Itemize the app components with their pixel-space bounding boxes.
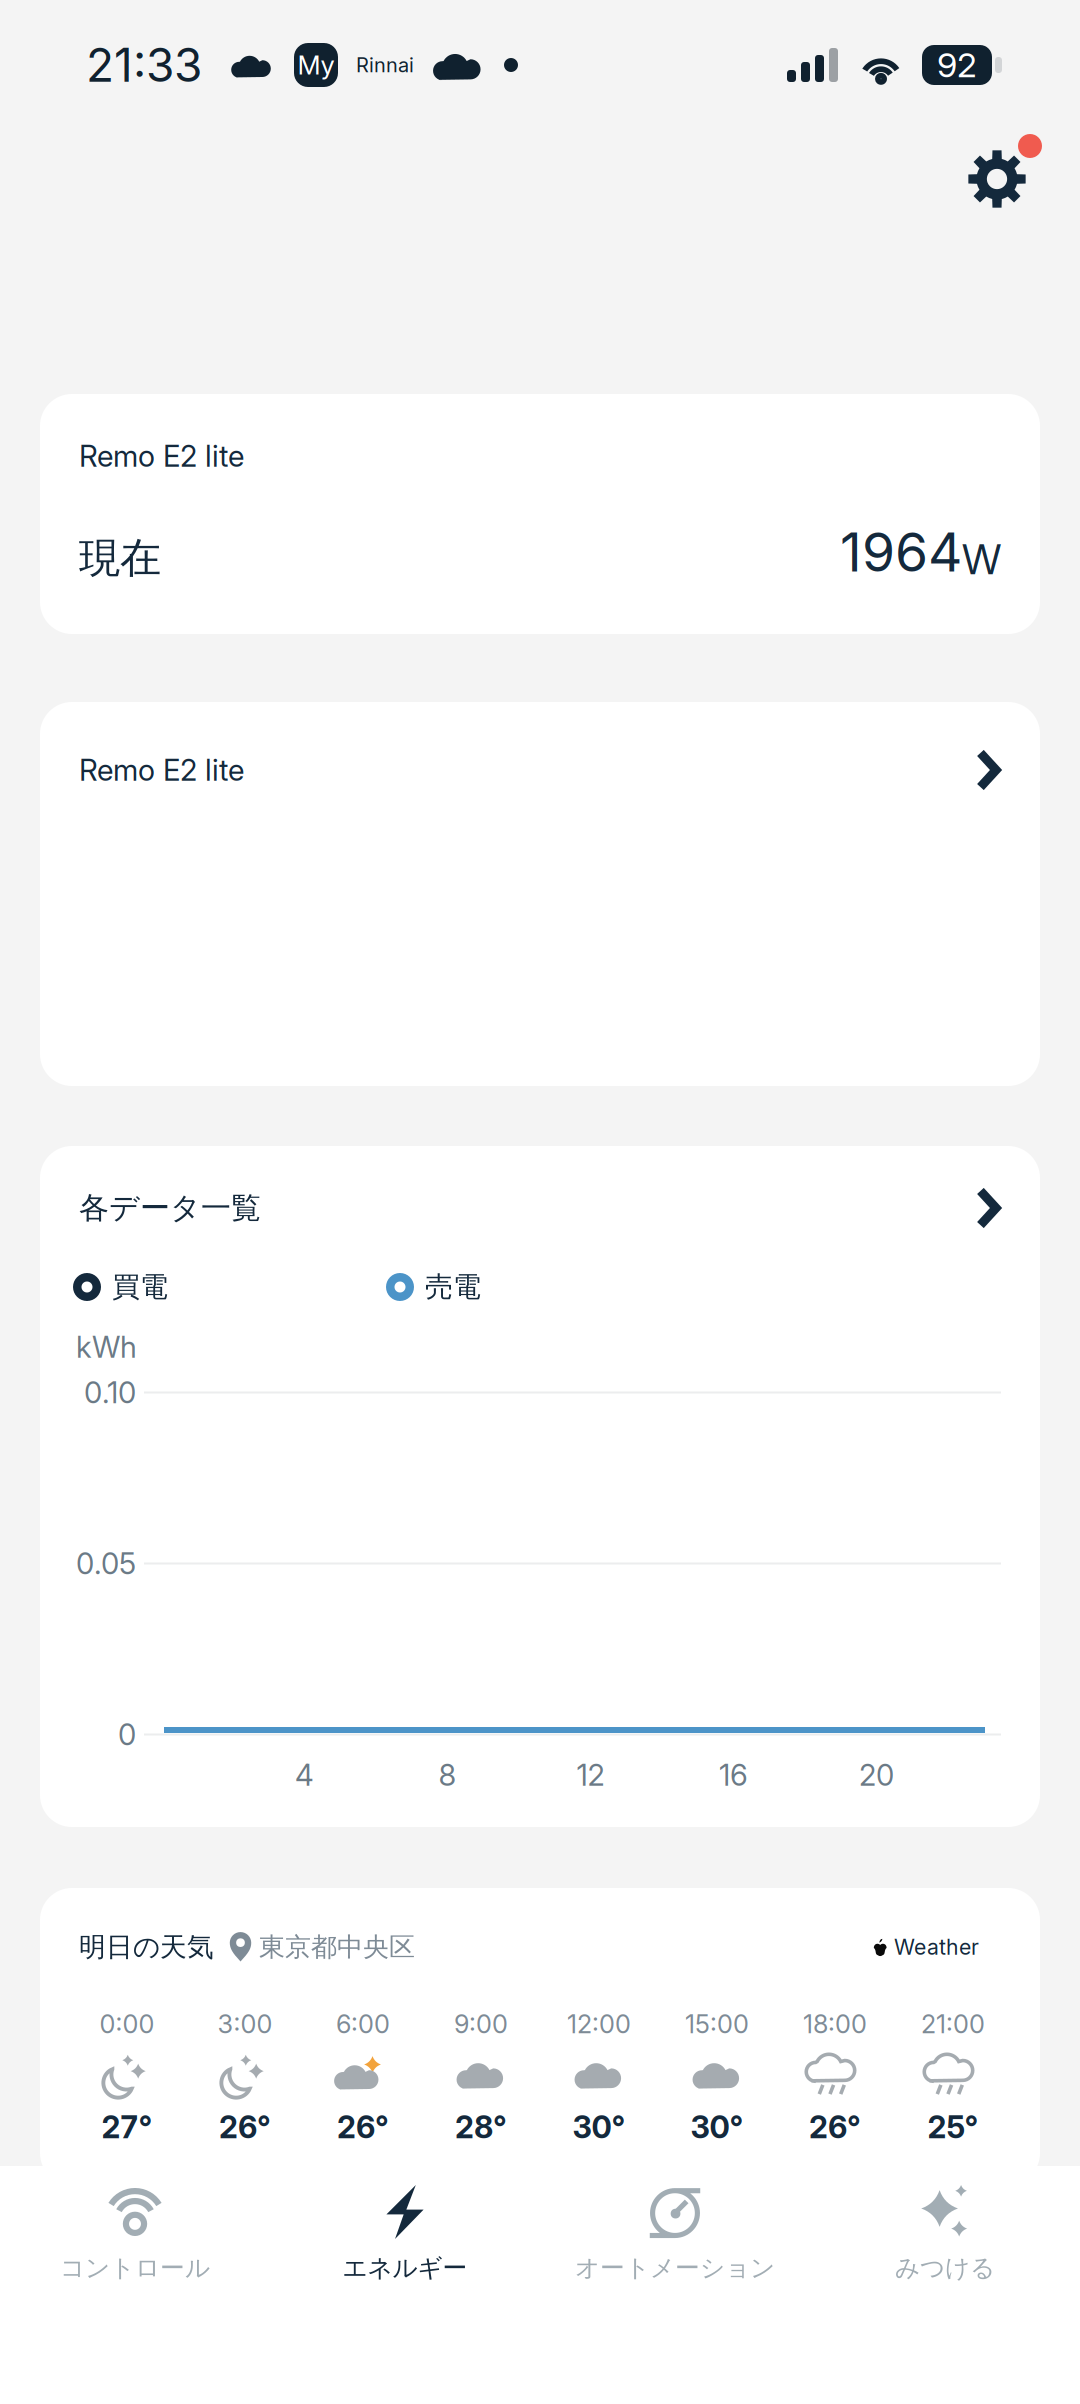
staticText: 21:33 (86, 37, 202, 93)
staticText: 買電 (112, 1269, 168, 1305)
staticText: 12 (576, 1757, 604, 1793)
button[interactable]: エネルギー (270, 2166, 540, 2404)
staticText: 26° (337, 2108, 389, 2145)
staticText: 30° (572, 2108, 625, 2145)
staticText: 28° (455, 2108, 507, 2145)
staticText: 30° (690, 2108, 743, 2145)
button[interactable]: みつける (810, 2166, 1080, 2404)
staticText: 25° (927, 2108, 978, 2145)
staticText: Rinnai (356, 53, 414, 77)
button[interactable]: Remo E2 lite (40, 702, 1040, 1086)
staticText: 現在 (79, 532, 161, 584)
staticText: 3:00 (217, 2009, 272, 2039)
staticText: 4 (295, 1757, 314, 1793)
staticText: 18:00 (803, 2009, 867, 2039)
staticText: 0.10 (84, 1375, 136, 1410)
staticText: Remo E2 lite (79, 752, 244, 788)
staticText: Weather (894, 1934, 979, 1960)
staticText: 明日の天気 (79, 1930, 214, 1964)
staticText: My (297, 49, 334, 81)
staticText: 16 (719, 1757, 748, 1793)
staticText: 0:00 (99, 2009, 154, 2039)
staticText: 21:00 (921, 2009, 985, 2039)
staticText: 8 (438, 1757, 456, 1793)
staticText: オートメーション (575, 2252, 775, 2284)
staticText: 各データ一覧 (79, 1189, 261, 1227)
staticText: kWh (76, 1329, 137, 1365)
staticText: 12:00 (567, 2009, 631, 2039)
staticText: 26° (809, 2108, 861, 2145)
staticText: 1964 (840, 520, 962, 584)
staticText: 26° (219, 2108, 271, 2145)
staticText: 売電 (425, 1269, 481, 1305)
button[interactable]: Settings (950, 130, 1042, 222)
staticText: 0 (118, 1717, 136, 1752)
staticText: Remo E2 lite (79, 438, 244, 474)
staticText: コントロール (60, 2252, 210, 2284)
staticText: みつける (895, 2252, 995, 2284)
staticText: 27° (101, 2108, 152, 2145)
staticText: 15:00 (685, 2009, 749, 2039)
staticText: 92 (937, 44, 977, 85)
button[interactable]: オートメーション (540, 2166, 810, 2404)
staticText: エネルギー (342, 2252, 467, 2284)
staticText: 9:00 (454, 2009, 508, 2039)
staticText: 6:00 (336, 2009, 390, 2039)
staticText: 東京都中央区 (259, 1931, 415, 1963)
staticText: 0.05 (76, 1546, 136, 1581)
button[interactable]: コントロール (0, 2166, 270, 2404)
staticText: W (962, 534, 1001, 584)
staticText: 20 (859, 1757, 894, 1793)
